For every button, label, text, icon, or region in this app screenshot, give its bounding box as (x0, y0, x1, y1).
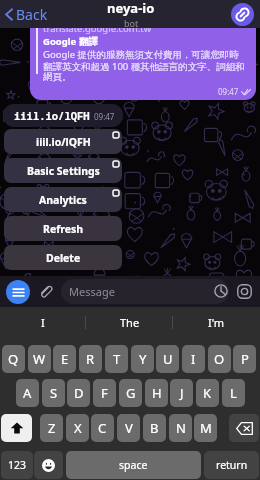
staticText: Basic Settings (27, 164, 100, 178)
button[interactable]: translate.google.com.tw (30, 21, 256, 100)
staticText: iiil.io/lQFH (14, 109, 90, 123)
button[interactable]: X (66, 414, 89, 442)
button[interactable]: S (42, 379, 65, 407)
button[interactable]: C (91, 414, 114, 442)
button[interactable]: M (194, 414, 217, 442)
button[interactable]: K (196, 379, 219, 407)
button[interactable]: H (145, 379, 168, 407)
button[interactable]: F (93, 379, 116, 407)
staticText: A (23, 384, 32, 402)
staticText: J (180, 384, 184, 402)
staticText: neya-io (107, 0, 155, 17)
button[interactable]: Basic Settings (4, 158, 122, 183)
staticText: Back (16, 5, 48, 24)
button[interactable]: D (67, 379, 90, 407)
button[interactable]: O (208, 345, 231, 373)
staticText: translate.google.com.tw (43, 22, 152, 35)
button[interactable]: I'm (173, 307, 260, 337)
button[interactable]: B (143, 414, 166, 442)
staticText: Delete (46, 251, 81, 265)
staticText: S (50, 384, 58, 402)
button[interactable]: I (182, 345, 205, 373)
button[interactable]: Emoji (34, 451, 63, 479)
button[interactable]: E (53, 345, 76, 373)
button[interactable]: Copy link (231, 3, 254, 26)
staticText: I'm (208, 315, 225, 330)
staticText: E (61, 350, 69, 368)
staticText: return (216, 458, 248, 472)
button[interactable]: U (156, 345, 179, 373)
staticText: I (191, 350, 196, 368)
staticText: Google 翻譯 (43, 35, 98, 48)
button[interactable]: Message (61, 279, 229, 304)
staticText: N (176, 419, 186, 437)
staticText: Y (139, 350, 147, 368)
staticText: I (41, 315, 45, 330)
button[interactable]: R (79, 345, 102, 373)
button[interactable]: Delete (4, 245, 122, 270)
button[interactable]: P (233, 345, 256, 373)
staticText: K (203, 384, 212, 402)
staticText: Refresh (43, 222, 84, 236)
staticText: F (101, 384, 108, 402)
staticText: The (120, 315, 140, 330)
button[interactable]: Analytics (4, 187, 122, 212)
button[interactable]: Q (2, 345, 25, 373)
button[interactable]: Backspace (229, 414, 259, 442)
staticText: U (163, 350, 173, 368)
button[interactable]: A (16, 379, 39, 407)
button[interactable]: iiil.io/lQFH (4, 129, 122, 154)
staticText: iiil.io/lQFH (36, 135, 91, 149)
staticText: L (230, 384, 237, 402)
button[interactable]: return (204, 451, 259, 479)
staticText: B (150, 419, 159, 437)
button[interactable]: Y (131, 345, 154, 373)
staticText: Q (8, 350, 19, 368)
staticText: 09:47 (94, 111, 115, 122)
button[interactable]: Camera (236, 283, 253, 300)
button[interactable]: Back (0, 5, 56, 24)
staticText: X (74, 419, 82, 437)
staticText: space (119, 458, 148, 472)
button[interactable]: 123 (1, 451, 33, 479)
button[interactable]: Shift (1, 414, 32, 442)
staticText: M (200, 419, 212, 437)
staticText: R (86, 350, 95, 368)
staticText: Z (48, 419, 56, 437)
button[interactable]: T (105, 345, 128, 373)
button[interactable]: Z (40, 414, 63, 442)
button[interactable]: W (28, 345, 51, 373)
button[interactable]: I (0, 307, 86, 337)
button[interactable]: Refresh (4, 216, 122, 241)
staticText: C (98, 419, 107, 437)
staticText: H (152, 384, 162, 402)
staticText: O (214, 350, 225, 368)
button[interactable]: G (119, 379, 142, 407)
button[interactable]: space (66, 451, 201, 479)
staticText: G (126, 384, 136, 402)
staticText: D (74, 384, 84, 402)
button[interactable]: Attach (37, 283, 54, 300)
staticText: 123 (8, 458, 27, 472)
button[interactable]: N (169, 414, 192, 442)
staticText: V (125, 419, 133, 437)
staticText: W (33, 350, 46, 368)
button[interactable]: V (117, 414, 140, 442)
staticText: Analytics (39, 193, 87, 207)
button[interactable]: The (86, 307, 173, 337)
staticText: P (241, 350, 249, 368)
button[interactable]: Schedule message (213, 283, 229, 299)
staticText: T (113, 350, 121, 368)
button[interactable]: Bot commands (6, 280, 30, 304)
button[interactable]: J (170, 379, 193, 407)
button[interactable]: L (222, 379, 245, 407)
button[interactable]: iiil.io/lQFH (3, 104, 123, 127)
staticText: Message (69, 284, 115, 299)
staticText: Google 提供的服務無須支付費用，可讓您即時翻譯英文和超過 100 種其他語… (43, 48, 246, 83)
staticText: bot (124, 17, 139, 27)
staticText: 09:47 (218, 86, 239, 97)
